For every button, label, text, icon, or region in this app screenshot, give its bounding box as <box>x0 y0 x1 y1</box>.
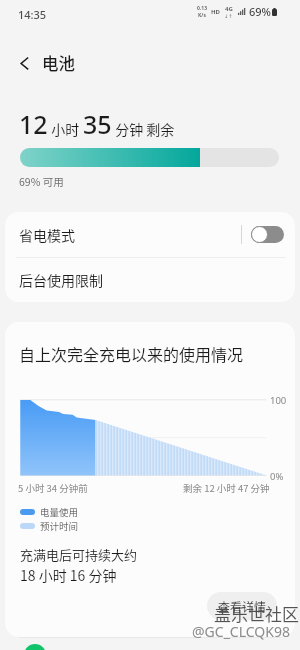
staticText: 分钟 剩余 <box>112 119 175 139</box>
staticText: 查看详情 <box>218 598 267 615</box>
button[interactable]: 省电模式 <box>5 212 295 257</box>
staticText: 盖乐世社区 <box>214 601 299 626</box>
staticText: 35 <box>83 107 112 141</box>
staticText: 69% 可用 <box>19 174 64 189</box>
staticText: HD <box>211 8 220 16</box>
staticText: ↓↑ <box>224 13 233 19</box>
staticText: 后台使用限制 <box>19 270 103 290</box>
button[interactable]: 查看详情 <box>207 592 277 620</box>
staticText: 小时 <box>48 119 83 139</box>
staticText: 预计时间 <box>40 519 79 533</box>
staticText: 5 小时 34 分钟前 <box>18 481 88 495</box>
staticText: 电量使用 <box>40 505 79 519</box>
button[interactable]: Power saving mode toggle <box>251 226 284 243</box>
staticText: 电池 <box>42 51 75 75</box>
staticText: @GC_CLCQK98 <box>192 622 290 641</box>
staticText: 自上次完全充电以来的使用情况 <box>19 342 244 365</box>
staticText: 18 小时 16 分钟 <box>20 565 117 585</box>
staticText: 充满电后可持续大约 <box>20 545 138 564</box>
staticText: 4G <box>225 5 233 13</box>
button[interactable]: Back <box>10 49 38 77</box>
staticText: 剩余 12 小时 47 分钟 <box>183 481 270 495</box>
staticText: 69% <box>249 4 271 19</box>
staticText: 100 <box>270 394 287 407</box>
staticText: 省电模式 <box>19 225 255 245</box>
staticText: 14:35 <box>18 7 47 22</box>
staticText: 0.13 <box>197 5 207 12</box>
button[interactable]: 后台使用限制 <box>5 257 295 302</box>
staticText: 0% <box>270 470 284 483</box>
staticText: 12 <box>19 107 48 141</box>
staticText: K/s <box>198 12 206 19</box>
